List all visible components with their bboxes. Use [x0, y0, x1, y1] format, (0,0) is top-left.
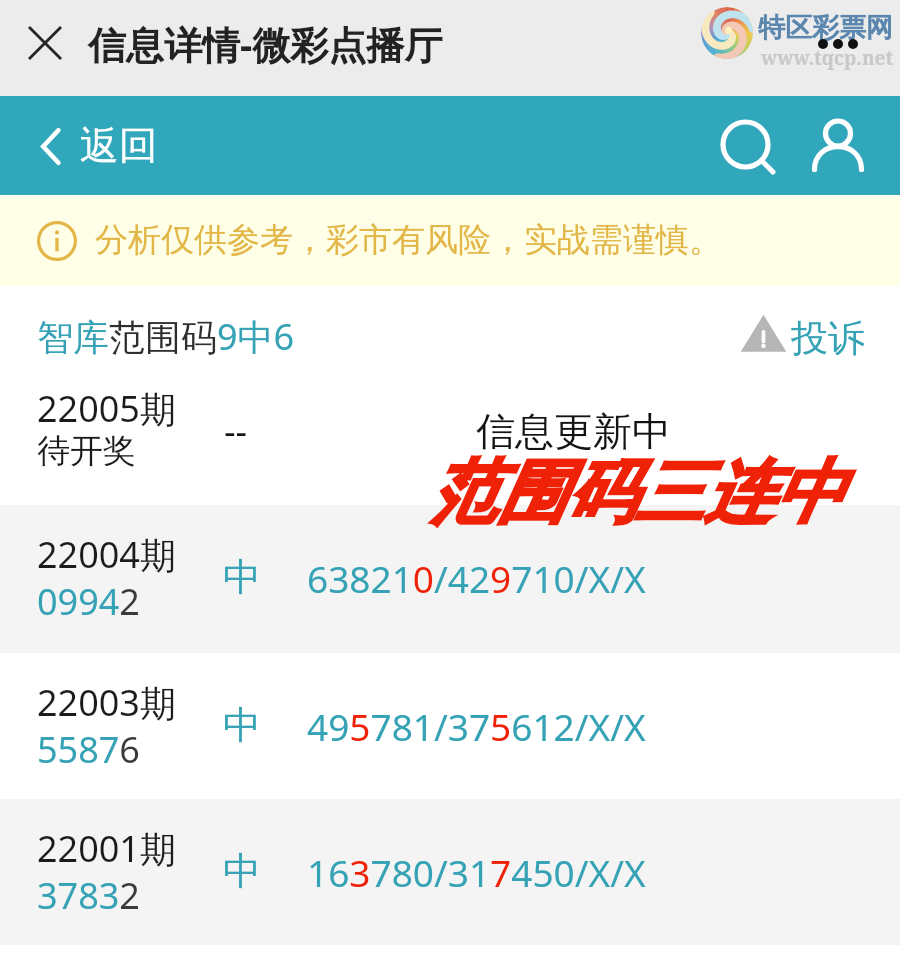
staticText: 范围码三连中	[428, 450, 842, 537]
staticText: 09942	[37, 577, 140, 626]
staticText: 投诉	[791, 315, 865, 362]
button[interactable]: 投诉	[740, 310, 861, 357]
staticText: 55876	[37, 725, 140, 774]
staticText: 22004期	[37, 530, 176, 579]
staticText: 22001期	[37, 824, 176, 873]
staticText: 智库范围码9中6	[37, 312, 295, 361]
staticText: 待开奖	[37, 430, 136, 472]
staticText: www.tqcp.net	[761, 45, 894, 71]
button[interactable]: Search	[712, 111, 779, 178]
staticText: 495781/375612/X/X	[307, 701, 646, 751]
staticText: 22005期	[37, 384, 176, 433]
staticText: 中	[223, 553, 261, 601]
button[interactable]: 22003期	[0, 653, 900, 800]
staticText: 特区彩票网	[758, 11, 893, 45]
button[interactable]: Profile	[806, 111, 870, 175]
button[interactable]: 22004期	[0, 505, 900, 652]
button[interactable]: Close	[18, 16, 72, 70]
staticText: --	[224, 406, 248, 455]
button[interactable]: 返回	[40, 122, 158, 171]
staticText: 中	[223, 701, 261, 749]
staticText: 信息详情-微彩点播厅	[88, 18, 443, 70]
staticText: 中	[223, 847, 261, 895]
staticText: 37832	[37, 871, 140, 920]
staticText: 638210/429710/X/X	[307, 553, 646, 603]
staticText: 分析仅供参考，彩市有风险，实战需谨慎。	[95, 219, 722, 261]
staticText: 信息更新中	[476, 407, 671, 456]
button[interactable]: 22005期	[0, 359, 900, 505]
staticText: 22003期	[37, 678, 176, 727]
staticText: 返回	[80, 121, 158, 170]
staticText: 163780/317450/X/X	[307, 847, 646, 897]
button[interactable]: 22001期	[0, 799, 900, 946]
